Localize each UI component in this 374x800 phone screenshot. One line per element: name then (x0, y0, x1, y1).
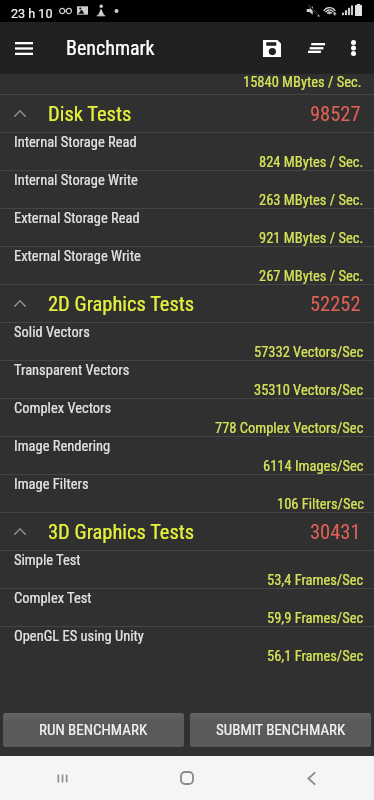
staticText: External Storage Read (14, 210, 140, 227)
button[interactable]: Back (249, 756, 374, 800)
staticText: 824 MBytes / Sec. (259, 154, 364, 170)
staticText: 6114 Images/Sec (263, 458, 364, 474)
button[interactable]: Image Filters (0, 475, 374, 512)
staticText: 15840 MBytes / Sec. (243, 74, 362, 91)
button[interactable]: Navigation menu (2, 26, 46, 70)
button[interactable]: Disk Tests (0, 95, 374, 132)
button[interactable]: Image Rendering (0, 437, 374, 474)
staticText: 778 Complex Vectors/Sec (215, 420, 364, 436)
button[interactable]: External Storage Read (0, 209, 374, 246)
button[interactable]: 2D Graphics Tests (0, 285, 374, 322)
staticText: Benchmark (66, 36, 155, 59)
staticText: Complex Test (14, 590, 92, 607)
staticText: 53,4 Frames/Sec (267, 572, 364, 588)
staticText: External Storage Write (14, 248, 141, 265)
staticText: 921 MBytes / Sec. (259, 230, 364, 246)
staticText: 106 Filters/Sec (277, 496, 364, 512)
staticText: 2D Graphics Tests (48, 292, 195, 316)
staticText: 263 MBytes / Sec. (259, 192, 364, 208)
staticText: 267 MBytes / Sec. (259, 268, 364, 284)
button[interactable]: SUBMIT BENCHMARK (190, 713, 371, 747)
staticText: Image Rendering (14, 438, 111, 455)
staticText: Simple Test (14, 552, 81, 569)
button[interactable]: Solid Vectors (0, 323, 374, 360)
staticText: 98527 (310, 102, 361, 126)
staticText: Internal Storage Read (14, 134, 137, 151)
staticText: 35310 Vectors/Sec (254, 382, 364, 398)
staticText: Internal Storage Write (14, 172, 138, 189)
staticText: 59,9 Frames/Sec (267, 610, 364, 626)
staticText: 30431 (310, 520, 361, 544)
staticText: 52252 (310, 292, 361, 316)
button[interactable]: Complex Test (0, 589, 374, 626)
button[interactable]: Complex Vectors (0, 399, 374, 436)
staticText: Complex Vectors (14, 400, 112, 417)
staticText: 3D Graphics Tests (48, 520, 195, 544)
button[interactable]: Recents (0, 756, 124, 800)
staticText: Solid Vectors (14, 324, 90, 341)
button[interactable]: External Storage Write (0, 247, 374, 284)
button[interactable]: Internal Storage Read (0, 133, 374, 170)
staticText: 23 h 10 (11, 6, 53, 21)
button[interactable]: Internal Storage Write (0, 171, 374, 208)
button[interactable]: Home (124, 756, 249, 800)
staticText: OpenGL ES using Unity (14, 628, 144, 645)
staticText: 57332 Vectors/Sec (254, 344, 364, 360)
staticText: Disk Tests (48, 102, 132, 126)
button[interactable]: Transparent Vectors (0, 361, 374, 398)
button[interactable]: More options (333, 26, 374, 70)
staticText: 56,1 Frames/Sec (267, 648, 364, 664)
staticText: SUBMIT BENCHMARK (216, 721, 346, 739)
staticText: Transparent Vectors (14, 362, 130, 379)
button[interactable]: Simple Test (0, 551, 374, 588)
button[interactable]: Sort (294, 26, 338, 70)
button[interactable]: OpenGL ES using Unity (0, 627, 374, 664)
button[interactable]: 3D Graphics Tests (0, 513, 374, 550)
staticText: Image Filters (14, 476, 89, 493)
button[interactable]: Save results (250, 26, 294, 70)
staticText: RUN BENCHMARK (39, 721, 148, 739)
button[interactable]: RUN BENCHMARK (3, 713, 184, 747)
